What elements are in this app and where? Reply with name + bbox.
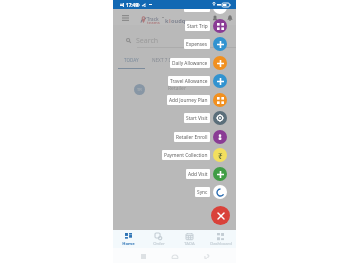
button[interactable]: Expenses [184,37,227,51]
staticText: Daily Allowance [172,60,208,67]
button[interactable]: Home [113,230,143,248]
button[interactable]: Payment Collection [162,148,227,162]
staticText: Travel Allowance [170,78,208,85]
button[interactable]: Home [169,251,180,262]
staticText: teams [147,20,160,26]
staticText: l [169,17,171,25]
button[interactable]: Recents [138,251,149,262]
staticText: Track [147,16,159,22]
staticText: Add Visit [188,171,208,178]
button[interactable]: Add Journey Plan [167,93,227,107]
button[interactable]: Daily Allowance [170,56,227,70]
staticText: Start Trip [187,23,208,30]
button[interactable]: Notifications [227,15,233,21]
button[interactable]: TADA [174,230,205,248]
button[interactable]: Start Trip [185,19,227,33]
staticText: Expenses [186,41,208,48]
staticText: TADA [184,241,195,247]
staticText: oudq [171,17,186,25]
button[interactable]: Profile [212,15,218,21]
button[interactable]: Order [143,230,174,248]
staticText: Home [122,241,135,247]
staticText: Payment Collection [164,152,208,159]
staticText: Search [136,36,159,46]
staticText: Start Visit [186,115,208,122]
button[interactable]: Close [211,206,230,225]
staticText: TODAY [124,57,139,63]
button[interactable]: Start Visit [184,111,227,125]
staticText: Add Journey Plan [169,97,208,104]
staticText: TR [137,87,142,92]
staticText: Retailer Enroll [176,134,208,141]
button[interactable]: Dashboard [205,230,236,248]
button[interactable]: Back [201,251,212,262]
staticText: Dashboard [210,241,232,247]
button[interactable]: Retailer Enroll [174,130,227,144]
staticText: k [165,17,169,25]
button[interactable]: Add Visit [186,167,227,181]
staticText: ₹ [218,150,223,161]
staticText: Order [153,241,165,247]
staticText: 17:49 [126,2,138,8]
staticText: Sync [197,189,208,196]
button[interactable]: Travel Allowance [168,74,227,88]
staticText: Retailer [168,85,187,92]
button[interactable]: Sync [195,185,227,199]
staticText: NEXT 7 DAYS [152,57,180,63]
button[interactable]: Menu [122,15,129,21]
